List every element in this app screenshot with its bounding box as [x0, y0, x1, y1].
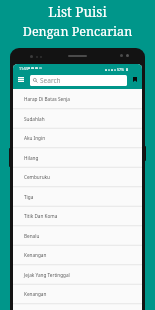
staticText: Benalu: [24, 233, 40, 239]
button[interactable]: Bookmark: [130, 74, 140, 85]
button[interactable]: Kenangan: [13, 284, 142, 304]
staticText: Sudahlah: [24, 116, 45, 122]
staticText: Kenangan: [24, 291, 47, 297]
staticText: Hilang: [24, 155, 39, 161]
staticText: 57%: [117, 67, 125, 72]
staticText: List Puisi: [0, 3, 155, 21]
staticText: Dengan Pencarian: [0, 23, 155, 40]
button[interactable]: Benalu: [13, 226, 142, 246]
button[interactable]: Cemburuku: [13, 167, 142, 187]
button[interactable]: Search: [30, 75, 127, 86]
button[interactable]: Aku Ingin: [13, 128, 142, 148]
staticText: Search: [40, 76, 61, 85]
staticText: Cemburuku: [24, 174, 51, 180]
button[interactable]: Harap Di Batas Senja: [13, 89, 142, 109]
staticText: Titik Dan Koma: [24, 213, 58, 219]
button[interactable]: Kenangan: [13, 245, 142, 265]
button[interactable]: Jejak Yang Tertinggal: [13, 265, 142, 285]
staticText: Tiga: [24, 194, 34, 200]
button[interactable]: Menu: [15, 74, 26, 85]
staticText: Kenangan: [24, 252, 47, 258]
staticText: Aku Ingin: [24, 135, 46, 141]
button[interactable]: Hilang: [13, 148, 142, 168]
staticText: 11:55: [19, 66, 29, 71]
button[interactable]: Titik Dan Koma: [13, 206, 142, 226]
button[interactable]: Sudahlah: [13, 109, 142, 129]
staticText: Jejak Yang Tertinggal: [24, 272, 70, 278]
staticText: Harap Di Batas Senja: [24, 96, 70, 102]
button[interactable]: Tiga: [13, 187, 142, 207]
